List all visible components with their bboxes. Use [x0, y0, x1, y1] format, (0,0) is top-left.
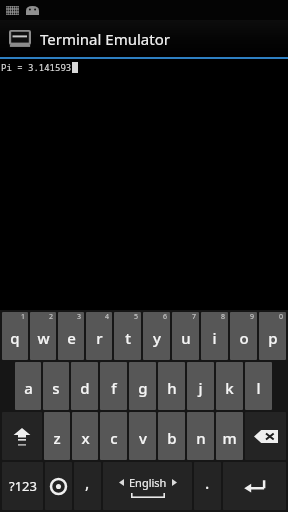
staticText: y [153, 328, 161, 348]
staticText: f [111, 378, 117, 398]
staticText: 3 [77, 312, 82, 322]
staticText: . [205, 472, 210, 494]
staticText: 4 [105, 312, 110, 322]
staticText: q [10, 328, 20, 348]
button[interactable]: w [30, 312, 56, 360]
button[interactable]: f [100, 362, 127, 410]
button[interactable]: Space, English [103, 462, 192, 510]
staticText: w [37, 328, 50, 348]
staticText: m [222, 428, 237, 448]
button[interactable]: Shift [2, 412, 42, 460]
button[interactable]: g [129, 362, 156, 410]
button[interactable]: y [143, 312, 170, 360]
staticText: d [80, 378, 90, 398]
staticText: 7 [192, 312, 197, 322]
staticText: e [67, 328, 76, 348]
staticText: h [167, 378, 177, 398]
staticText: 2 [49, 312, 54, 322]
button[interactable]: Terminal Emulator [0, 20, 288, 57]
staticText: c [110, 428, 118, 448]
staticText: s [52, 378, 60, 398]
staticText: 8 [221, 312, 226, 322]
button[interactable]: a [15, 362, 41, 410]
staticText: r [96, 328, 103, 348]
staticText: x [81, 428, 90, 448]
button[interactable]: Symbols [2, 462, 43, 510]
button[interactable]: d [71, 362, 98, 410]
button[interactable]: z [44, 412, 70, 460]
button[interactable]: u [172, 312, 199, 360]
button[interactable]: v [129, 412, 156, 460]
staticText: i [212, 328, 217, 348]
button[interactable]: Period [194, 462, 221, 510]
staticText: 9 [250, 312, 255, 322]
button[interactable]: i [201, 312, 228, 360]
staticText: p [268, 328, 278, 348]
staticText: a [24, 378, 33, 398]
button[interactable]: e [58, 312, 84, 360]
staticText: ?123 [9, 477, 37, 495]
staticText: t [125, 328, 131, 348]
staticText: k [225, 378, 234, 398]
button[interactable]: q [2, 312, 28, 360]
button[interactable]: Pi = 3.141593 [0, 59, 288, 310]
button[interactable]: j [187, 362, 214, 410]
button[interactable]: k [216, 362, 243, 410]
button[interactable]: Backspace [245, 412, 286, 460]
button[interactable]: t [114, 312, 141, 360]
button[interactable]: p [259, 312, 286, 360]
staticText: u [181, 328, 191, 348]
button[interactable]: b [158, 412, 185, 460]
staticText: n [196, 428, 206, 448]
staticText: Terminal Emulator [40, 29, 170, 49]
staticText: 5 [134, 312, 139, 322]
staticText: Pi = 3.141593 [1, 61, 72, 73]
staticText: l [256, 378, 261, 398]
staticText: o [239, 328, 249, 348]
staticText: g [138, 378, 148, 398]
staticText: j [198, 378, 203, 398]
button[interactable]: s [43, 362, 69, 410]
button[interactable]: n [187, 412, 214, 460]
button[interactable]: Comma [74, 462, 101, 510]
button[interactable]: x [72, 412, 98, 460]
button[interactable]: m [216, 412, 243, 460]
staticText: b [167, 428, 177, 448]
staticText: 6 [163, 312, 168, 322]
button[interactable]: r [86, 312, 112, 360]
staticText: v [139, 428, 147, 448]
staticText: 1 [21, 312, 26, 322]
button[interactable]: h [158, 362, 185, 410]
button[interactable]: l [245, 362, 272, 410]
button[interactable]: c [100, 412, 127, 460]
button[interactable]: Enter [223, 462, 286, 510]
staticText: z [53, 428, 61, 448]
staticText: 0 [279, 312, 284, 322]
button[interactable]: Input options [45, 462, 72, 510]
staticText: English [129, 475, 167, 490]
button[interactable]: o [230, 312, 257, 360]
staticText: , [85, 472, 90, 494]
